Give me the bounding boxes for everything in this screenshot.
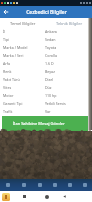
button[interactable]: Temel Bilgiler <box>0 18 46 28</box>
staticText: Corolla <box>45 53 57 58</box>
button[interactable]: Garanti Tipi <box>0 99 92 107</box>
staticText: Beyaz <box>45 69 55 74</box>
button[interactable]: Back <box>60 192 69 201</box>
staticText: Garanti Tipi <box>3 101 45 106</box>
staticText: Renk <box>3 69 45 74</box>
button[interactable]: Vites <box>0 83 92 91</box>
staticText: Sedan <box>45 37 56 42</box>
staticText: Yetkili Servis <box>45 101 66 106</box>
button[interactable]: App 4 <box>47 179 62 191</box>
staticText: Marka / Model <box>3 45 45 50</box>
staticText: Vites <box>3 85 45 90</box>
staticText: Arfa <box>3 61 45 66</box>
staticText: Marka / Seri <box>3 53 45 58</box>
staticText: 1.6 D <box>45 61 54 66</box>
button[interactable]: Arfa <box>0 59 92 67</box>
button[interactable]: Marka / Seri <box>0 51 92 59</box>
staticText: Yakıt Türü <box>3 77 45 82</box>
button[interactable]: Motor <box>0 91 92 99</box>
staticText: 110 hp <box>45 93 57 98</box>
button[interactable]: İl <box>0 28 92 35</box>
button[interactable]: Teknik Bilgiler <box>46 18 92 28</box>
staticText: Dizel <box>45 77 54 82</box>
button[interactable]: App 2 <box>16 179 32 191</box>
staticText: Var <box>45 109 51 114</box>
button[interactable]: İlan Sahibine Mesaj Gönder <box>2 116 88 131</box>
button[interactable]: Renk <box>0 67 92 75</box>
button[interactable]: Yakıt Türü <box>0 75 92 83</box>
button[interactable]: Tipi <box>0 35 92 43</box>
staticText: Teknik Bilgiler <box>56 21 83 26</box>
staticText: Düz <box>45 85 52 90</box>
button[interactable]: Home <box>42 192 51 201</box>
button[interactable]: Back <box>0 6 12 18</box>
button[interactable]: Marka / Model <box>0 43 92 51</box>
staticText: Trafik <box>3 109 45 114</box>
button[interactable]: Trafik <box>0 107 92 115</box>
button[interactable]: App 1 <box>0 179 16 191</box>
button[interactable]: App 5 <box>62 179 77 191</box>
staticText: Cezbedici Bilgiler <box>26 9 67 16</box>
staticText: Motor <box>3 93 45 98</box>
staticText: Toyota <box>45 45 57 50</box>
staticText: İlan Sahibine Mesaj Gönder <box>13 121 65 126</box>
staticText: Tipi <box>3 37 45 42</box>
button[interactable]: App 3 <box>32 179 47 191</box>
staticText: Temel Bilgiler <box>10 21 36 26</box>
button[interactable]: App 6 <box>77 179 92 191</box>
staticText: Ankara <box>45 29 57 34</box>
button[interactable]: App shortcut <box>2 193 10 201</box>
button[interactable]: Recents <box>20 192 29 201</box>
staticText: İl <box>3 29 45 34</box>
